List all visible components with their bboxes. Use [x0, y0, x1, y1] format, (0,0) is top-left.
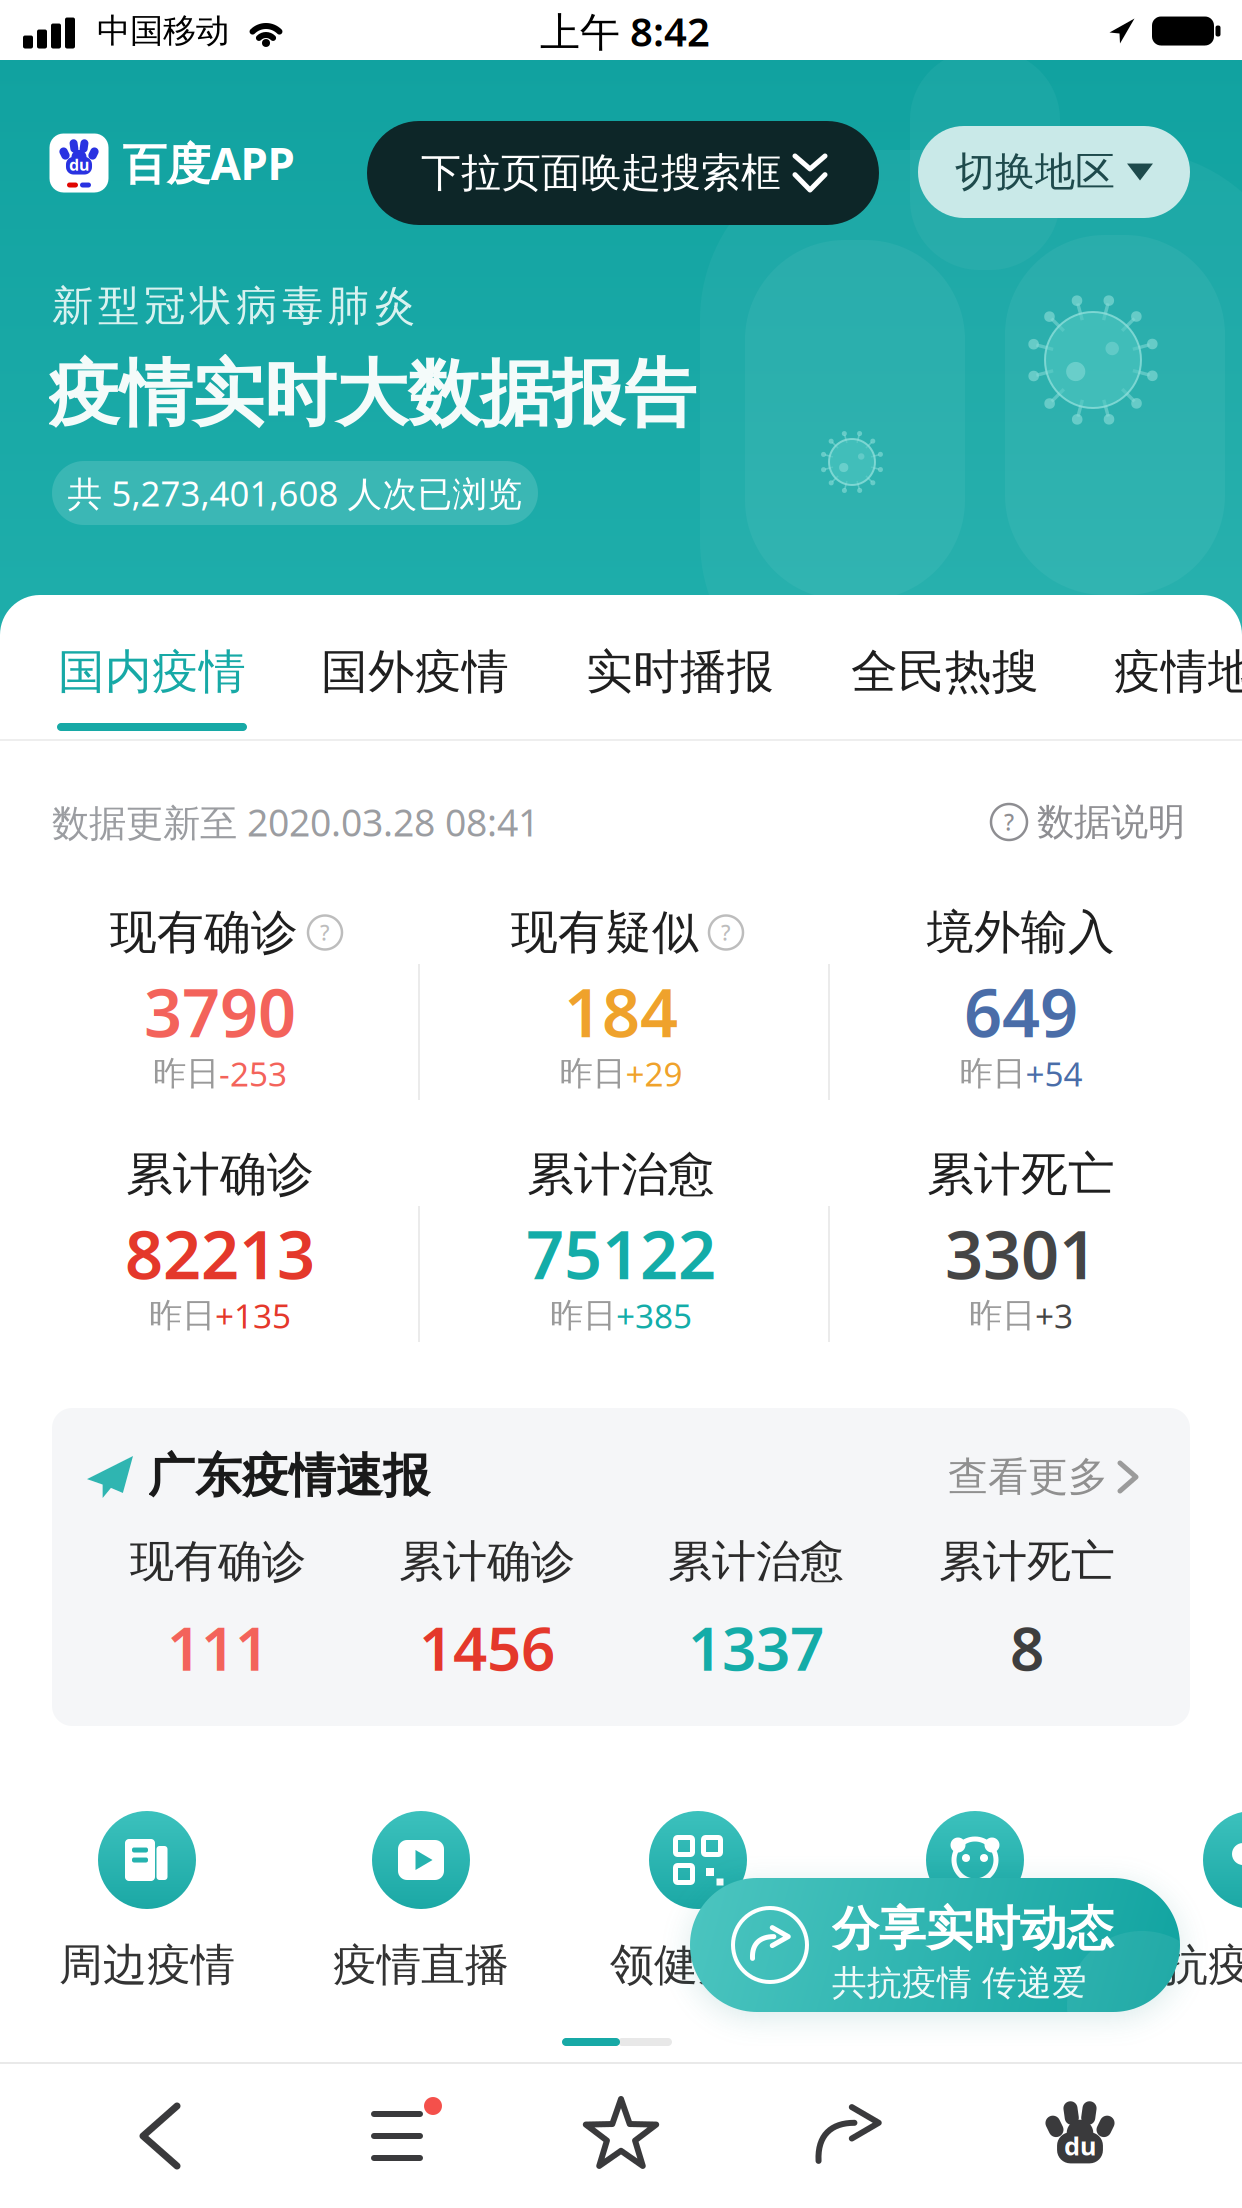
staticText: 查看更多 — [948, 1452, 1108, 1501]
staticText: 8 — [1010, 1608, 1044, 1687]
staticText: 649 — [964, 967, 1078, 1056]
staticText: 切换地区 — [955, 147, 1115, 196]
button[interactable]: 切换地区 — [918, 126, 1190, 218]
staticText: 累计治愈 — [527, 1146, 715, 1203]
staticText: 分享实时动态 — [832, 1900, 1114, 1958]
staticText: 111 — [167, 1608, 269, 1687]
staticText: 国外疫情 — [321, 643, 509, 701]
staticText: 共抗疫情 传递爱 — [832, 1962, 1087, 2004]
staticText: 同乘查询 — [887, 1938, 1063, 1992]
staticText: 昨日 — [550, 1295, 616, 1336]
staticText: 下拉页面唤起搜索框 — [421, 148, 781, 197]
staticText: +385 — [616, 1293, 692, 1338]
button[interactable]: 疫情地图 — [1114, 643, 1242, 701]
staticText: 境外输入 — [927, 904, 1115, 961]
button[interactable]: 周边疫情 — [27, 1809, 267, 1989]
staticText: 昨日 — [153, 1053, 219, 1094]
staticText: 1337 — [688, 1608, 824, 1687]
staticText: 184 — [564, 967, 678, 1056]
staticText: du — [69, 154, 89, 175]
staticText: 82213 — [125, 1209, 315, 1298]
staticText: 数据更新至 2020.03.28 08:41 — [52, 797, 539, 847]
button[interactable]: 分享实时动态 — [690, 1878, 1180, 2012]
button[interactable]: 下拉页面唤起搜索框 — [367, 121, 879, 225]
staticText: 昨日 — [969, 1295, 1035, 1336]
button[interactable]: 同乘查询 — [855, 1809, 1095, 1989]
button[interactable]: 查看更多 — [948, 1452, 1136, 1501]
staticText: 抗疫爱心 — [1164, 1938, 1242, 1992]
staticText: 共 5,273,401,608 人次已浏览 — [67, 470, 522, 516]
staticText: 累计治愈 — [668, 1534, 844, 1588]
button[interactable]: 实时播报 — [586, 643, 774, 701]
staticText: 国内疫情 — [58, 643, 246, 701]
staticText: 领健康码 — [610, 1938, 786, 1992]
staticText: 实时播报 — [586, 643, 774, 701]
staticText: +29 — [625, 1051, 682, 1096]
staticText: 广东疫情速报 — [148, 1447, 430, 1505]
staticText: 疫情地图 — [1114, 643, 1242, 701]
staticText: 全民热搜 — [851, 643, 1039, 701]
staticText: 现有确诊 — [110, 904, 298, 961]
button[interactable]: 抗疫爱心 — [1132, 1809, 1242, 1989]
staticText: +135 — [215, 1293, 291, 1338]
button[interactable]: 分享 — [758, 2064, 938, 2204]
staticText: 1456 — [419, 1608, 555, 1687]
staticText: -253 — [219, 1051, 287, 1096]
button[interactable]: 百度首页 — [990, 2066, 1170, 2206]
staticText: 75122 — [526, 1209, 716, 1298]
button[interactable]: du — [49, 133, 294, 192]
staticText: 累计确诊 — [399, 1534, 575, 1588]
staticText: 上午 8:42 — [540, 4, 710, 57]
staticText: 现有疑似 — [511, 904, 699, 961]
button[interactable]: 国内疫情 — [58, 643, 246, 701]
staticText: 中国移动 — [97, 10, 229, 51]
staticText: 数据说明 — [1037, 799, 1185, 845]
button[interactable]: 收藏 — [531, 2066, 711, 2206]
button[interactable]: 国外疫情 — [321, 643, 509, 701]
button[interactable]: 领健康码 — [578, 1809, 818, 1989]
staticText: 昨日 — [559, 1053, 625, 1094]
staticText: +54 — [1025, 1051, 1082, 1096]
button[interactable]: ? — [991, 799, 1185, 845]
staticText: 3790 — [144, 967, 296, 1056]
staticText: du — [1064, 2129, 1096, 2162]
button[interactable]: 返回 — [70, 2066, 250, 2206]
button[interactable]: 菜单 — [307, 2066, 487, 2206]
staticText: +3 — [1035, 1293, 1073, 1338]
staticText: 新型冠状病毒肺炎 — [52, 281, 415, 331]
staticText: ? — [721, 918, 731, 947]
staticText: 疫情实时大数据报告 — [48, 350, 696, 438]
staticText: ? — [320, 918, 330, 947]
staticText: 累计死亡 — [927, 1146, 1115, 1203]
staticText: 昨日 — [959, 1053, 1025, 1094]
button[interactable]: 全民热搜 — [851, 643, 1039, 701]
staticText: 昨日 — [149, 1295, 215, 1336]
staticText: 百度APP — [122, 134, 294, 192]
staticText: 现有确诊 — [130, 1534, 306, 1588]
staticText: 疫情直播 — [333, 1938, 509, 1992]
staticText: ? — [1004, 807, 1014, 837]
staticText: 累计确诊 — [126, 1146, 314, 1203]
button[interactable]: 疫情直播 — [301, 1809, 541, 1989]
staticText: 累计死亡 — [939, 1534, 1115, 1588]
staticText: 周边疫情 — [59, 1938, 235, 1992]
staticText: 3301 — [945, 1209, 1097, 1298]
